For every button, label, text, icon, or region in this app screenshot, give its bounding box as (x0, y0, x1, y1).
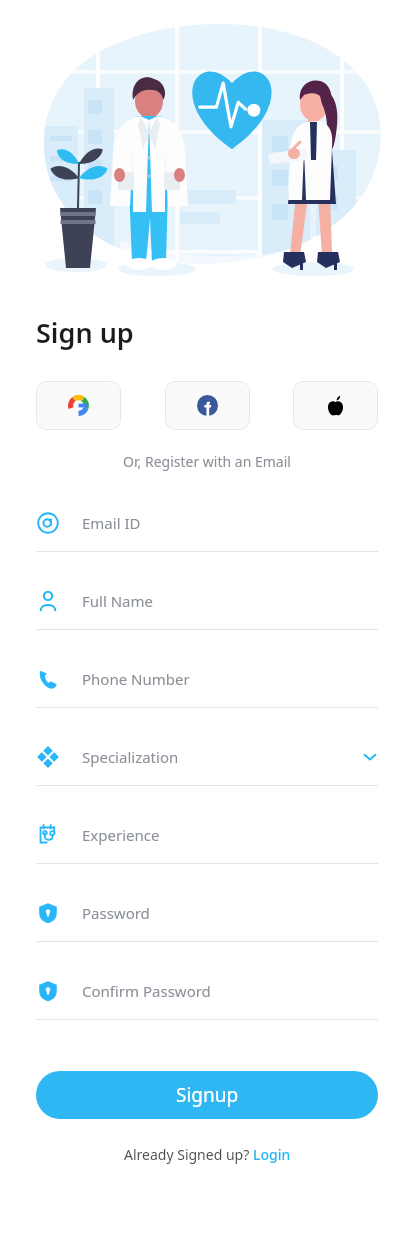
button[interactable]: Password (0, 885, 414, 963)
button[interactable]: Confirm Password (0, 963, 414, 1041)
button[interactable]: Signup (36, 1071, 378, 1119)
staticText: Experience (82, 825, 160, 845)
staticText: Password (82, 903, 150, 923)
staticText: Login (253, 1145, 291, 1164)
staticText: Phone Number (82, 669, 190, 689)
staticText: Confirm Password (82, 981, 211, 1001)
button[interactable]: Experience (0, 807, 414, 885)
button[interactable]: Phone Number (0, 651, 414, 729)
staticText: Already Signed up? (124, 1145, 253, 1164)
button[interactable]: Email ID (0, 495, 414, 573)
button[interactable]: Sign up with Google (36, 381, 121, 430)
button[interactable]: Sign up with Apple (293, 381, 378, 430)
button[interactable]: Specialization (0, 729, 414, 807)
staticText: Or, Register with an Email (0, 452, 414, 471)
button[interactable]: Login (253, 1145, 291, 1164)
staticText: Email ID (82, 513, 141, 533)
staticText: Signup (176, 1082, 239, 1108)
staticText: Sign up (36, 314, 134, 351)
button[interactable]: Full Name (0, 573, 414, 651)
button[interactable]: Sign up with Facebook (165, 381, 250, 430)
staticText: Full Name (82, 591, 153, 611)
staticText: Specialization (82, 747, 179, 767)
